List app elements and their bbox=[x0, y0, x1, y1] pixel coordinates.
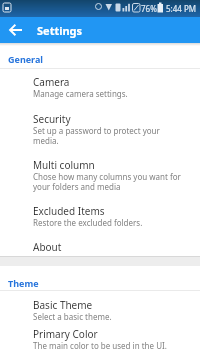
staticText: Primary Color bbox=[33, 327, 98, 341]
button[interactable]: Camera bbox=[0, 72, 200, 109]
button[interactable] bbox=[4, 18, 28, 42]
staticText: Theme bbox=[8, 277, 39, 289]
staticText: Chose how many columns you want for your… bbox=[33, 171, 181, 193]
staticText: About bbox=[33, 240, 62, 254]
staticText: Security bbox=[33, 112, 71, 126]
staticText: Select a basic theme. bbox=[33, 311, 112, 322]
staticText: Camera bbox=[33, 75, 70, 89]
staticText: Multi column bbox=[33, 158, 95, 172]
button[interactable]: Primary Color bbox=[0, 324, 200, 355]
staticText: Basic Theme bbox=[33, 298, 93, 312]
staticText: The main color to be used in the UI. bbox=[33, 340, 167, 351]
button[interactable]: Excluded Items bbox=[0, 201, 200, 237]
staticText: General bbox=[8, 53, 44, 65]
staticText: 5:44 PM bbox=[166, 3, 197, 14]
button[interactable]: Security bbox=[0, 109, 200, 155]
staticText: 76% bbox=[141, 3, 157, 14]
staticText: Manage camera settings. bbox=[33, 88, 128, 99]
button[interactable]: Multi column bbox=[0, 155, 200, 200]
staticText: Settings bbox=[37, 23, 83, 38]
staticText: Excluded Items bbox=[33, 204, 105, 218]
staticText: Restore the excluded folders. bbox=[33, 217, 143, 228]
staticText: Set up a password to protect your media. bbox=[33, 125, 160, 147]
button[interactable]: Basic Theme bbox=[0, 295, 200, 324]
button[interactable]: About bbox=[0, 237, 200, 256]
